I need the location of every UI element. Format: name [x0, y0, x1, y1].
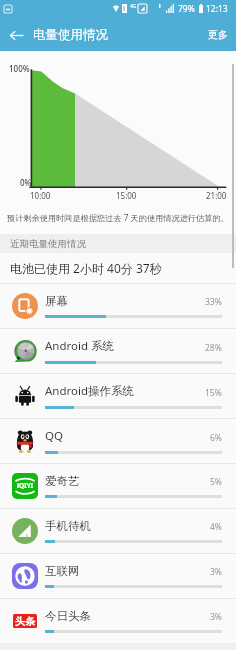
button[interactable]: 屏幕: [0, 284, 236, 328]
button[interactable]: iQIYI: [0, 464, 236, 508]
staticText: Android 系统: [45, 338, 115, 354]
staticText: Android操作系统: [45, 383, 135, 399]
button[interactable]: 更多: [200, 22, 236, 47]
staticText: 6%: [210, 432, 222, 444]
staticText: 更多: [208, 28, 228, 41]
staticText: 电池已使用 2小时 40分 37秒: [10, 260, 162, 276]
staticText: 21:00: [206, 190, 227, 201]
staticText: 15:00: [116, 190, 137, 201]
staticText: 4%: [210, 521, 222, 533]
staticText: 手机待机: [45, 519, 91, 533]
button[interactable]: Android操作系统: [0, 374, 236, 418]
button[interactable]: 互联网: [0, 554, 236, 598]
staticText: 5%: [210, 476, 222, 488]
staticText: 3%: [210, 611, 222, 623]
button[interactable]: 手机待机: [0, 509, 236, 553]
staticText: 100%: [9, 63, 30, 74]
staticText: 12:13: [206, 3, 228, 15]
staticText: 屏幕: [45, 294, 68, 308]
staticText: 3%: [210, 566, 222, 578]
button[interactable]: Android 系统: [0, 329, 236, 373]
button[interactable]: 头条: [0, 599, 236, 643]
staticText: 头条: [15, 615, 35, 628]
staticText: 电量使用情况: [33, 27, 108, 43]
staticText: iQIYI: [17, 481, 33, 491]
staticText: 近期电量使用情况: [10, 238, 86, 250]
button[interactable]: 电池已使用 2小时 40分 37秒: [0, 253, 236, 283]
button[interactable]: Back: [5, 24, 27, 46]
staticText: 预计剩余使用时间是根据您过去 7 天的使用情况进行估算的。: [7, 212, 229, 223]
staticText: 今日头条: [45, 609, 91, 623]
staticText: 互联网: [45, 564, 80, 578]
staticText: 0%: [20, 177, 32, 188]
staticText: 28%: [205, 342, 222, 354]
staticText: 10:00: [30, 190, 51, 201]
staticText: QQ: [45, 428, 63, 444]
staticText: 4G: [130, 3, 137, 10]
staticText: 15%: [205, 387, 222, 399]
button[interactable]: QQ: [0, 419, 236, 463]
staticText: 爱奇艺: [45, 474, 80, 488]
staticText: 79%: [178, 3, 195, 15]
staticText: 33%: [205, 296, 222, 308]
